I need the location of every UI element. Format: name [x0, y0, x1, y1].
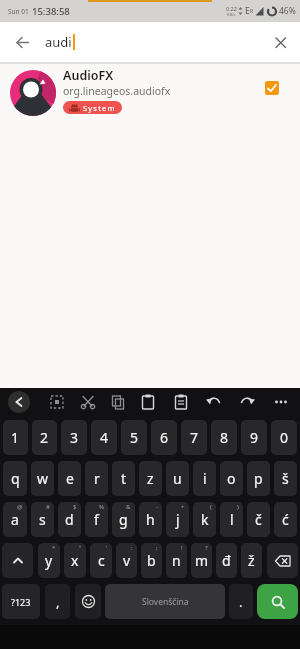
button[interactable]: Slovenščina — [105, 584, 225, 619]
button[interactable]: h — [139, 502, 162, 537]
staticText: u — [173, 469, 182, 488]
staticText: , — [56, 593, 60, 611]
button[interactable]: đ — [216, 543, 237, 578]
button[interactable] — [0, 22, 44, 62]
button[interactable] — [265, 81, 279, 95]
staticText: i — [203, 469, 207, 488]
button[interactable]: b — [141, 543, 162, 578]
button[interactable]: p — [247, 461, 270, 496]
staticText: v — [123, 551, 131, 570]
button[interactable]: n — [166, 543, 187, 578]
staticText: " — [79, 544, 82, 552]
button[interactable]: 7 — [181, 420, 207, 455]
staticText: o — [227, 469, 236, 488]
button[interactable]: . — [229, 584, 253, 619]
staticText: AudioFX — [63, 67, 114, 84]
staticText: x — [71, 551, 79, 570]
button[interactable]: 4 — [91, 420, 117, 455]
staticText: ( — [210, 503, 212, 511]
button[interactable]: š — [274, 461, 297, 496]
button[interactable]: w — [31, 461, 54, 496]
button[interactable] — [260, 22, 300, 62]
button[interactable]: z — [139, 461, 162, 496]
button[interactable]: 1 — [3, 420, 28, 455]
staticText: z — [147, 469, 154, 488]
staticText: % — [99, 503, 104, 511]
button[interactable]: 9 — [241, 420, 267, 455]
button[interactable] — [2, 543, 33, 578]
staticText: l — [230, 510, 234, 529]
button[interactable] — [75, 584, 101, 619]
button[interactable]: 0 — [271, 420, 297, 455]
staticText: @ — [17, 503, 23, 511]
staticText: KB/s — [227, 12, 236, 17]
button[interactable]: 5 — [121, 420, 147, 455]
staticText: c — [98, 551, 105, 570]
staticText: 46% — [279, 5, 296, 17]
button[interactable]: AudioFX — [0, 64, 300, 130]
button[interactable]: g — [112, 502, 135, 537]
staticText: t — [121, 469, 127, 488]
button[interactable]: e — [58, 461, 81, 496]
button[interactable]: 2 — [32, 420, 57, 455]
staticText: e — [66, 469, 74, 488]
staticText: 0 — [280, 428, 289, 447]
staticText: E — [245, 5, 250, 17]
staticText: ; — [156, 544, 158, 552]
staticText: - — [156, 503, 158, 511]
staticText: ? — [205, 544, 208, 552]
button[interactable]: 6 — [151, 420, 177, 455]
staticText: System — [83, 103, 116, 113]
button[interactable]: r — [85, 461, 108, 496]
staticText: ) — [237, 503, 239, 511]
staticText: + — [181, 503, 185, 511]
button[interactable]: d — [58, 502, 81, 537]
button[interactable]: u — [166, 461, 189, 496]
button[interactable]: c — [90, 543, 112, 578]
button[interactable] — [257, 584, 298, 619]
staticText: j — [176, 510, 180, 529]
button[interactable] — [267, 543, 298, 578]
button[interactable]: ž — [241, 543, 262, 578]
button[interactable]: s — [31, 502, 54, 537]
button[interactable]: , — [45, 584, 70, 619]
staticText: đ — [222, 551, 231, 570]
staticText: g — [119, 510, 128, 529]
staticText: 3 — [70, 428, 79, 447]
button[interactable]: m — [191, 543, 212, 578]
staticText: š — [282, 469, 289, 488]
button[interactable]: x — [64, 543, 86, 578]
staticText: ! — [181, 544, 183, 552]
staticText: ć — [282, 510, 289, 529]
staticText: č — [255, 510, 262, 529]
button[interactable]: 3 — [61, 420, 87, 455]
button[interactable]: q — [3, 461, 27, 496]
button[interactable]: f — [85, 502, 108, 537]
button[interactable]: y — [38, 543, 60, 578]
button[interactable]: č — [247, 502, 270, 537]
staticText: ?123 — [11, 596, 31, 608]
staticText: & — [126, 503, 131, 511]
button[interactable]: ć — [274, 502, 297, 537]
staticText: ž — [248, 551, 255, 570]
button[interactable]: ?123 — [2, 584, 40, 619]
staticText: R — [250, 8, 254, 15]
button[interactable]: a — [3, 502, 27, 537]
button[interactable]: l — [220, 502, 243, 537]
button[interactable]: v — [116, 543, 137, 578]
button[interactable]: j — [166, 502, 189, 537]
staticText: org.lineageos.audiofx — [63, 84, 171, 98]
button[interactable]: o — [220, 461, 243, 496]
staticText: a — [11, 510, 19, 529]
button[interactable]: 8 — [211, 420, 237, 455]
staticText: s — [39, 510, 46, 529]
staticText: 1 — [11, 428, 20, 447]
staticText: p — [254, 469, 263, 488]
button[interactable]: k — [193, 502, 216, 537]
button[interactable]: i — [193, 461, 216, 496]
staticText: n — [172, 551, 181, 570]
staticText: Sun 01 — [8, 7, 29, 16]
staticText: ' — [106, 544, 108, 552]
button[interactable]: t — [112, 461, 135, 496]
staticText: w — [37, 469, 49, 488]
